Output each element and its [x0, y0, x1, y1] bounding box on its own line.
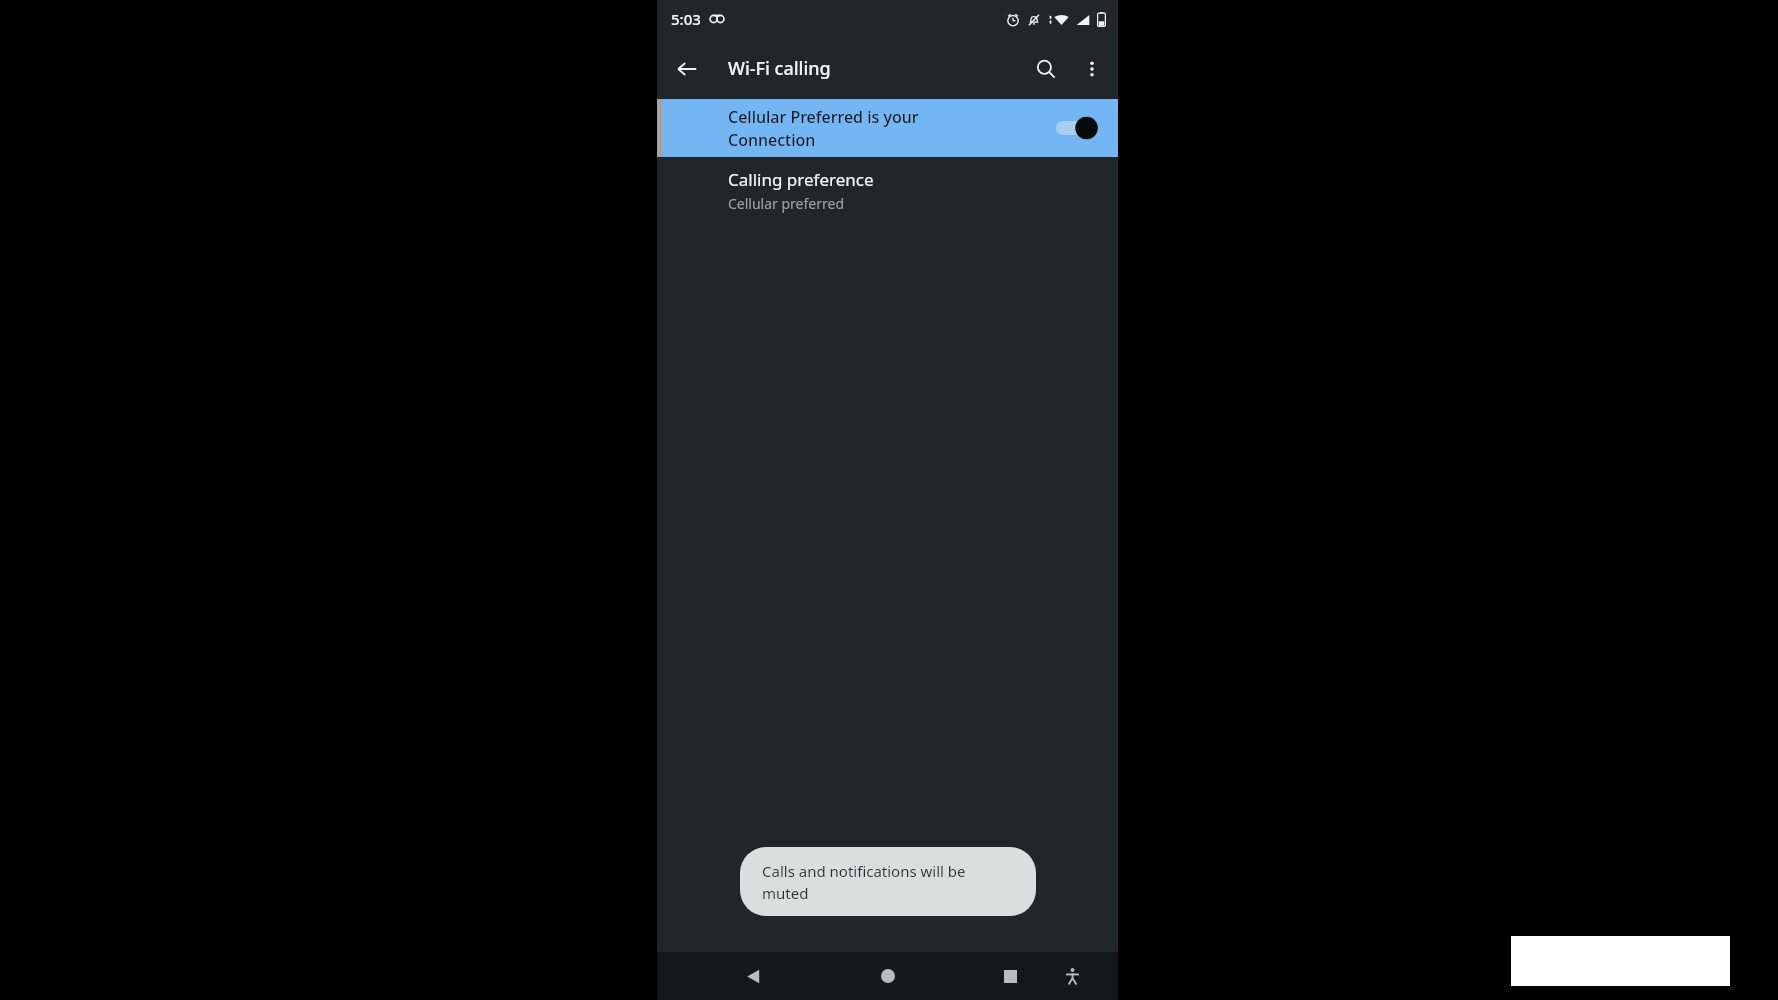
button[interactable]: Accessibility — [1052, 956, 1092, 996]
button[interactable]: Back — [731, 954, 775, 998]
staticText: 5:03 — [671, 9, 701, 29]
staticText: Calling preference — [728, 168, 874, 191]
staticText: Cellular preferred — [728, 194, 845, 213]
button[interactable]: Calling preference — [657, 157, 1118, 225]
button[interactable]: Search — [1022, 45, 1070, 93]
staticText: Connection — [728, 129, 816, 151]
button[interactable]: Recent apps — [988, 954, 1032, 998]
staticText: muted — [762, 883, 809, 903]
button[interactable]: Back — [663, 45, 711, 93]
staticText: Cellular Preferred is your — [728, 106, 919, 128]
button[interactable]: Cellular Preferred is your — [657, 99, 1118, 157]
staticText: Calls and notifications will be — [762, 861, 966, 881]
button[interactable]: More options — [1070, 47, 1114, 91]
staticText: Wi-Fi calling — [728, 56, 831, 81]
button[interactable]: Home — [866, 954, 910, 998]
button[interactable]: Toggle Wi-Fi calling — [1048, 108, 1104, 148]
